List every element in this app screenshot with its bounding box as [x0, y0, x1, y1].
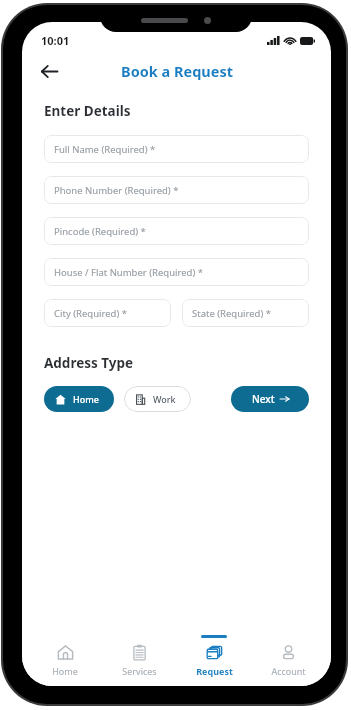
button[interactable]: State (Required) *: [182, 299, 309, 327]
staticText: Enter Details: [44, 102, 131, 120]
button[interactable]: Full Name (Required) *: [44, 135, 309, 163]
button[interactable]: Work: [124, 386, 191, 412]
button[interactable]: Next: [231, 386, 309, 412]
staticText: State (Required) *: [192, 307, 272, 320]
button[interactable]: Account: [257, 632, 319, 677]
button[interactable]: Pincode (Required) *: [44, 217, 309, 245]
button[interactable]: Services: [108, 632, 170, 677]
staticText: Phone Number (Required) *: [54, 184, 179, 197]
button[interactable]: City (Required) *: [44, 299, 171, 327]
staticText: Account: [271, 665, 306, 677]
button[interactable]: Phone Number (Required) *: [44, 176, 309, 204]
staticText: Home: [52, 665, 78, 677]
button[interactable]: Back: [32, 54, 66, 88]
button[interactable]: Request: [183, 632, 245, 677]
staticText: Pincode (Required) *: [54, 225, 146, 238]
staticText: Book a Request: [121, 61, 233, 81]
staticText: Request: [196, 665, 233, 677]
staticText: Home: [73, 393, 99, 405]
staticText: Services: [122, 665, 157, 677]
staticText: Work: [153, 393, 176, 405]
staticText: House / Flat Number (Required) *: [54, 266, 203, 279]
staticText: Address Type: [44, 354, 134, 372]
button[interactable]: House / Flat Number (Required) *: [44, 258, 309, 286]
staticText: 10:01: [41, 33, 70, 48]
staticText: City (Required) *: [54, 307, 127, 320]
button[interactable]: Home: [44, 386, 114, 412]
staticText: Full Name (Required) *: [54, 143, 156, 156]
button[interactable]: Home: [34, 632, 96, 677]
staticText: Next: [252, 392, 275, 406]
